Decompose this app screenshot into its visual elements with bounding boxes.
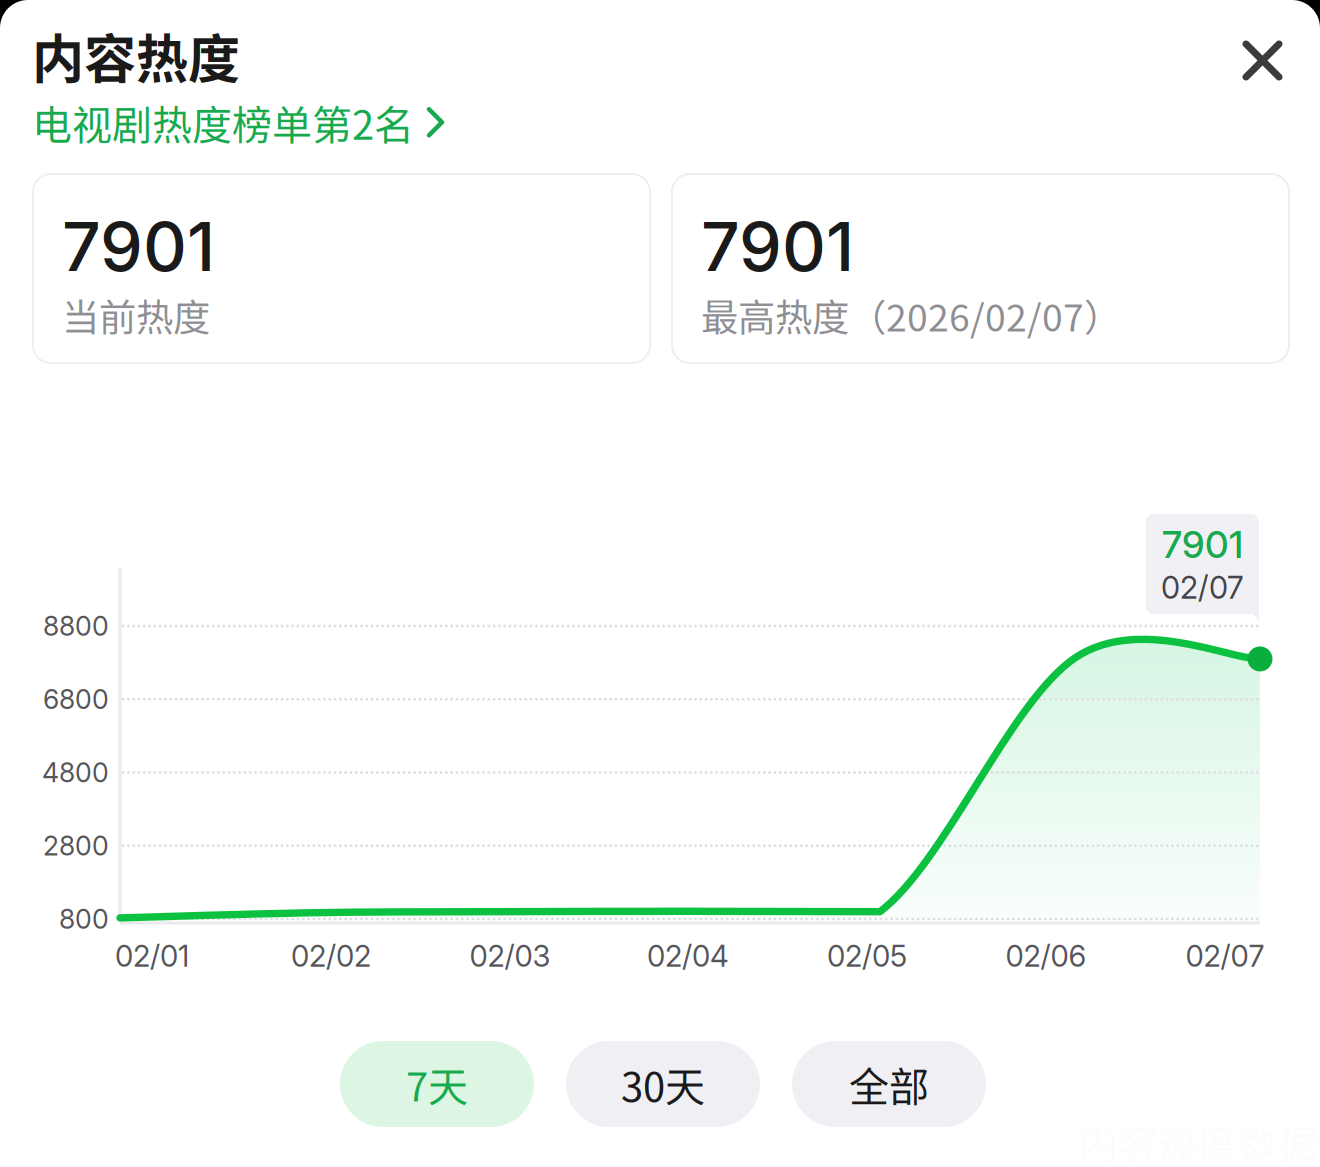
staticText: 7901 [62, 205, 215, 287]
staticText: 30天 [621, 1055, 705, 1113]
staticText: 内容热度 [32, 18, 240, 93]
staticText: 02/02 [291, 938, 371, 974]
staticText: 全部 [849, 1055, 929, 1113]
staticText: 02/01 [115, 938, 189, 974]
staticText: 最高热度（2026/02/07） [701, 288, 1121, 342]
button[interactable]: 全部 [792, 1041, 986, 1127]
staticText: 电视剧热度榜单第2名 [32, 93, 414, 151]
staticText: 02/04 [647, 938, 729, 974]
button[interactable]: 电视剧热度榜单第2名 [32, 93, 445, 151]
staticText: 800 [59, 903, 109, 935]
staticText: 02/06 [1005, 938, 1086, 974]
button[interactable]: 30天 [566, 1041, 760, 1127]
staticText: 7901 [1162, 522, 1243, 567]
staticText: 02/05 [827, 938, 907, 974]
staticText: 6800 [43, 683, 109, 715]
staticText: 02/07 [1185, 938, 1264, 974]
staticText: 4800 [42, 756, 109, 789]
button[interactable]: Close [1242, 40, 1283, 81]
button[interactable]: 7天 [340, 1041, 534, 1127]
staticText: 8800 [43, 610, 109, 642]
staticText: 2800 [43, 830, 109, 862]
staticText: 02/07 [1161, 569, 1244, 606]
staticText: 7天 [406, 1055, 468, 1113]
staticText: 02/03 [469, 938, 550, 974]
staticText: 当前热度 [62, 288, 210, 342]
staticText: 7901 [701, 205, 854, 287]
